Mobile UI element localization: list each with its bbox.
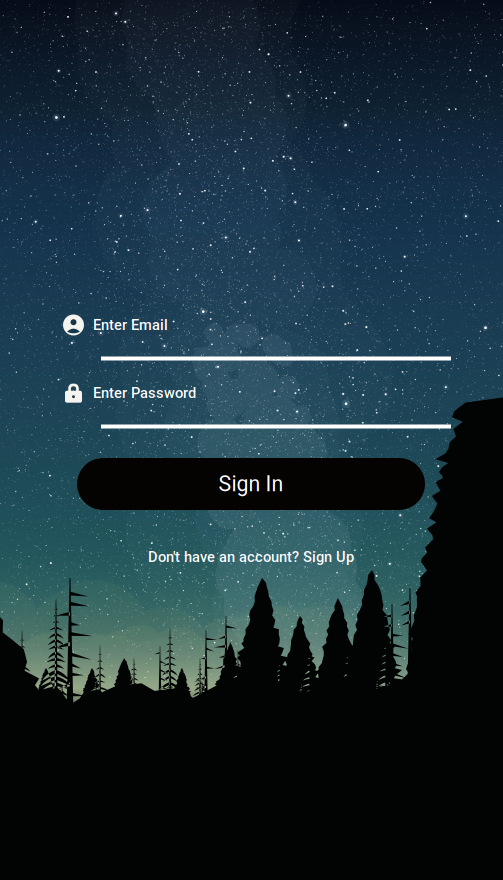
button[interactable]: Don't have an account? Sign Up — [148, 546, 354, 568]
staticText: Sign In — [218, 471, 283, 496]
staticText: Enter Password — [93, 384, 196, 402]
staticText: Enter Email — [93, 316, 168, 334]
button[interactable]: Enter Email — [63, 308, 413, 342]
button[interactable]: Sign In — [77, 458, 425, 510]
staticText: Don't have an account? Sign Up — [148, 548, 354, 566]
button[interactable]: Enter Password — [63, 376, 413, 410]
